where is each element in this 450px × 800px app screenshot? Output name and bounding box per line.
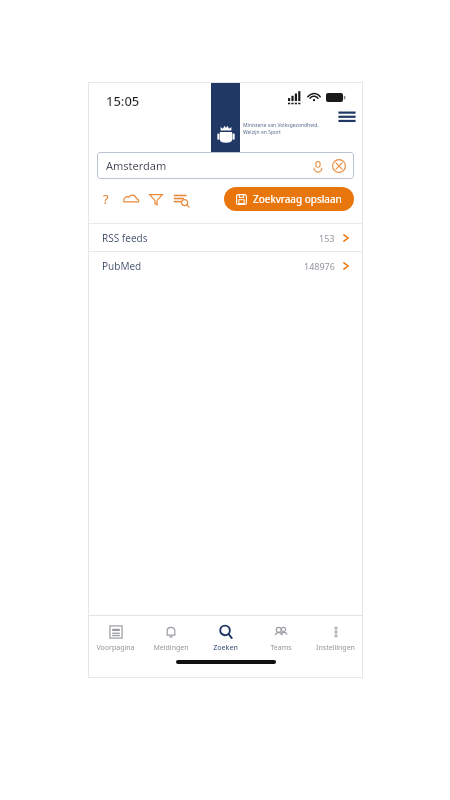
button[interactable]: PubMed <box>88 252 363 279</box>
button[interactable]: RSS feeds <box>88 224 363 251</box>
button[interactable]: Cloud <box>122 190 140 208</box>
staticText: 148976 <box>304 260 335 272</box>
staticText: Ministerie van Volksgezondheid, <box>243 122 319 129</box>
staticText: Welzijn en Sport <box>243 129 281 136</box>
button[interactable]: Instellingen <box>308 616 363 660</box>
button[interactable]: Help <box>97 190 115 208</box>
staticText: Voorpagina <box>96 643 135 653</box>
button[interactable]: Zoekvraag opslaan <box>224 187 354 211</box>
staticText: PubMed <box>102 259 142 273</box>
button[interactable]: Clear search <box>331 158 347 174</box>
staticText: Zoekvraag opslaan <box>253 192 342 206</box>
button[interactable]: Voice search <box>310 158 326 174</box>
staticText: 153 <box>319 232 335 244</box>
button[interactable]: Search in list <box>172 190 190 208</box>
staticText: Meldingen <box>153 643 189 653</box>
staticText: Teams <box>270 643 292 653</box>
staticText: ? <box>103 190 109 208</box>
button[interactable]: Zoeken <box>198 616 253 660</box>
button[interactable]: Voorpagina <box>88 616 143 660</box>
button[interactable]: Teams <box>253 616 308 660</box>
button[interactable]: Meldingen <box>143 616 198 660</box>
button[interactable]: Menu <box>336 108 358 124</box>
staticText: Instellingen <box>316 643 355 653</box>
button[interactable]: Amsterdam <box>97 152 354 179</box>
staticText: 15:05 <box>106 92 140 110</box>
staticText: Amsterdam <box>106 158 167 173</box>
button[interactable]: Filter <box>147 190 165 208</box>
staticText: RSS feeds <box>102 231 148 245</box>
staticText: Zoeken <box>213 643 238 653</box>
